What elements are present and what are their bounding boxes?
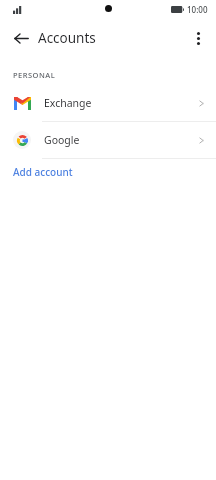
staticText: 10:00: [187, 4, 208, 15]
staticText: Add account: [13, 165, 73, 179]
button[interactable]: Back: [6, 23, 36, 53]
button[interactable]: Exchange: [0, 85, 216, 121]
button[interactable]: Add account: [0, 159, 216, 185]
staticText: Exchange: [44, 96, 197, 110]
staticText: Accounts: [38, 29, 96, 47]
button[interactable]: More options: [184, 24, 212, 52]
button[interactable]: Google: [0, 122, 216, 158]
staticText: Google: [44, 133, 197, 147]
staticText: PERSONAL: [13, 70, 56, 80]
